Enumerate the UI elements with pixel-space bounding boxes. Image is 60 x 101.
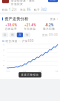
- staticText: 总收益率: [5, 27, 17, 31]
- staticText: 1.6: [2, 54, 4, 56]
- button[interactable]: 更多 ›: [50, 17, 58, 21]
- staticText: 月: [18, 33, 21, 37]
- button[interactable]: 查看完整报告: [19, 72, 41, 77]
- button[interactable]: 年: [24, 33, 30, 37]
- staticText: -8.2%: [45, 23, 53, 27]
- staticText: 04月: [23, 70, 26, 72]
- staticText: 更多 ›: [50, 17, 58, 21]
- button[interactable]: 日: [2, 33, 8, 37]
- staticText: 2.0: [2, 49, 4, 51]
- staticText: 更新 09:30: [42, 33, 58, 37]
- staticText: 资深投资者 · 擅长价值投资: [11, 0, 35, 6]
- staticText: 沪深300: [22, 39, 34, 43]
- staticText: 组合净值: [5, 39, 17, 43]
- staticText: +38.6%: [5, 23, 16, 27]
- staticText: 最大回撤: [43, 27, 55, 31]
- staticText: 日: [4, 33, 7, 37]
- staticText: +21.4%: [24, 23, 35, 27]
- staticText: 1.2: [2, 59, 4, 61]
- staticText: 资产走势分析: [4, 16, 28, 21]
- staticText: 07月: [39, 70, 42, 72]
- staticText: 关注: [50, 0, 56, 1]
- button[interactable]: 关注: [48, 0, 58, 2]
- staticText: 10月: [55, 70, 58, 72]
- staticText: 年化收益: [24, 27, 36, 31]
- staticText: 周: [11, 33, 14, 37]
- staticText: 01月: [6, 70, 9, 72]
- button[interactable]: 周: [9, 33, 16, 37]
- staticText: 2.4: [2, 44, 4, 46]
- button[interactable]: 月: [17, 33, 23, 37]
- staticText: 粉丝 1.2万 关注 86 帖子 342: [2, 8, 47, 11]
- staticText: 年: [26, 33, 29, 37]
- staticText: 0.8: [2, 65, 4, 66]
- staticText: 查看完整报告: [21, 73, 39, 76]
